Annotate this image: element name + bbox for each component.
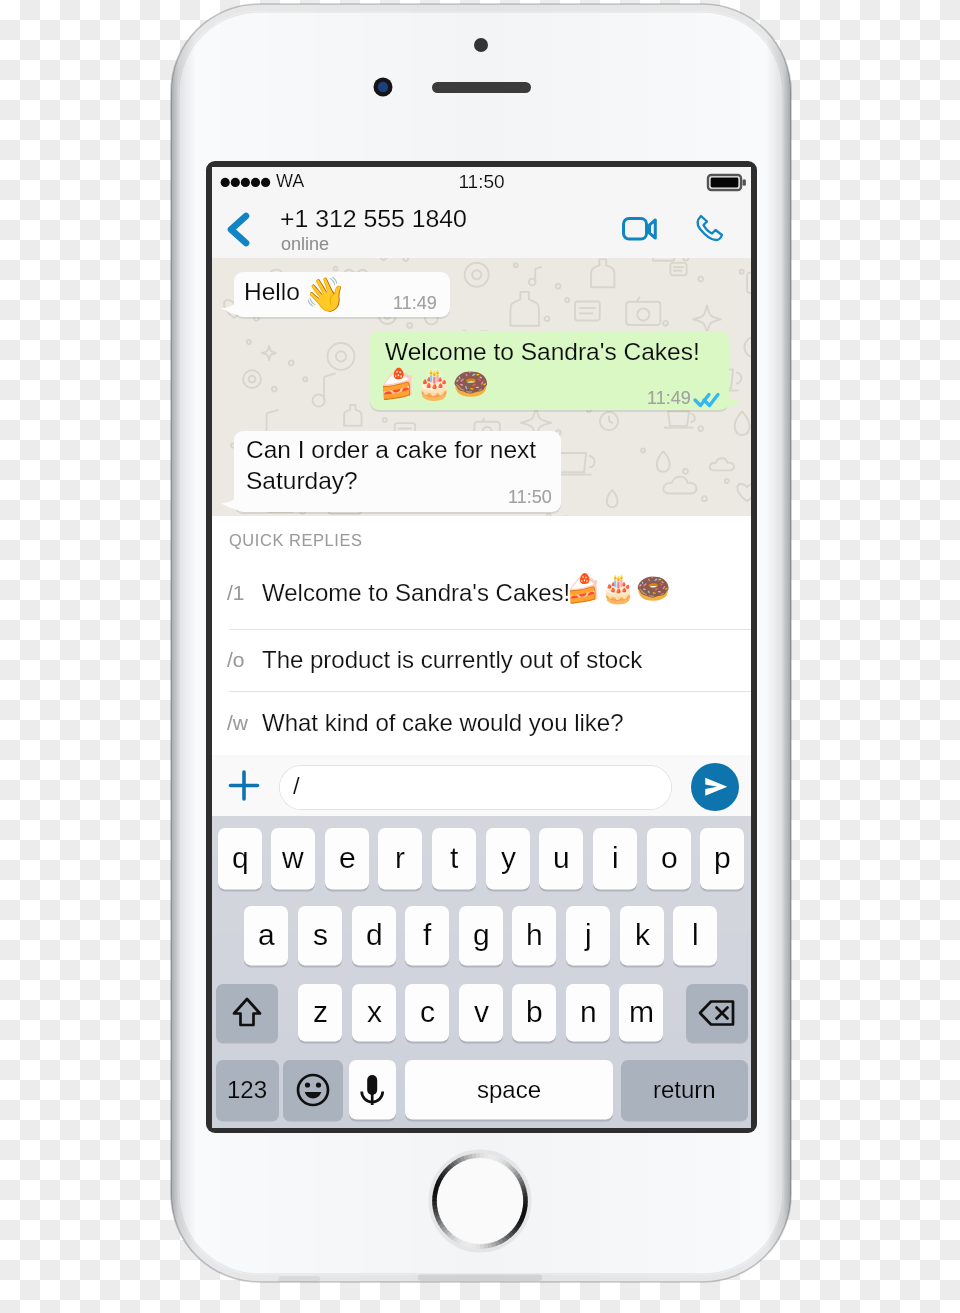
staticText: Hello: [244, 278, 300, 305]
staticText: return: [653, 1076, 716, 1103]
button[interactable]: u: [539, 828, 583, 890]
staticText: 👋: [304, 274, 347, 314]
button[interactable]: z: [298, 984, 342, 1042]
button[interactable]: m: [619, 984, 663, 1042]
staticText: /1: [227, 581, 245, 604]
staticText: online: [281, 234, 330, 254]
staticText: t: [450, 841, 459, 875]
button[interactable]: return: [621, 1060, 748, 1120]
button[interactable]: Back: [214, 200, 262, 258]
staticText: p: [714, 841, 731, 875]
staticText: The product is currently out of stock: [262, 646, 643, 673]
staticText: y: [501, 841, 516, 875]
staticText: n: [580, 995, 597, 1029]
staticText: z: [313, 995, 328, 1029]
staticText: 11:49: [393, 293, 437, 313]
button[interactable]: x: [352, 984, 396, 1042]
staticText: i: [612, 841, 619, 875]
button[interactable]: Dictate: [349, 1060, 396, 1120]
button[interactable]: /1: [212, 564, 751, 625]
staticText: s: [313, 918, 328, 952]
staticText: g: [473, 918, 490, 952]
button[interactable]: Backspace: [686, 984, 748, 1042]
button[interactable]: h: [512, 906, 556, 966]
button[interactable]: v: [459, 984, 503, 1042]
button[interactable]: b: [512, 984, 556, 1042]
staticText: c: [420, 995, 435, 1029]
button[interactable]: a: [244, 906, 288, 966]
staticText: q: [232, 841, 249, 875]
button[interactable]: s: [298, 906, 342, 966]
staticText: o: [661, 841, 678, 875]
staticText: h: [526, 918, 543, 952]
staticText: u: [553, 841, 570, 875]
staticText: /w: [227, 711, 248, 734]
button[interactable]: Shift: [216, 984, 278, 1042]
button[interactable]: /w: [212, 690, 751, 752]
staticText: QUICK REPLIES: [229, 531, 363, 549]
staticText: 11:49: [647, 388, 691, 408]
staticText: v: [474, 995, 489, 1029]
button[interactable]: e: [325, 828, 369, 890]
staticText: e: [339, 841, 356, 875]
staticText: f: [423, 918, 432, 952]
staticText: 🍰🎂🍩: [566, 572, 671, 605]
staticText: w: [282, 841, 304, 875]
button[interactable]: y: [486, 828, 530, 890]
button[interactable]: d: [352, 906, 396, 966]
staticText: 123: [227, 1076, 268, 1103]
staticText: /: [293, 772, 300, 799]
button[interactable]: k: [620, 906, 664, 966]
button[interactable]: 123: [216, 1060, 279, 1120]
staticText: 🍰🎂🍩: [379, 367, 490, 402]
button[interactable]: f: [405, 906, 449, 966]
staticText: x: [367, 995, 382, 1029]
button[interactable]: i: [593, 828, 637, 890]
staticText: 11:50: [508, 487, 552, 507]
button[interactable]: Video call: [610, 200, 668, 258]
staticText: l: [692, 918, 699, 952]
staticText: 11:50: [212, 171, 751, 192]
staticText: k: [635, 918, 650, 952]
button[interactable]: g: [459, 906, 503, 966]
staticText: Can I order a cake for next Saturday?: [246, 436, 537, 494]
button[interactable]: Attach: [218, 760, 270, 811]
button[interactable]: Voice call: [680, 200, 738, 258]
button[interactable]: t: [432, 828, 476, 890]
staticText: a: [258, 918, 275, 952]
button[interactable]: o: [647, 828, 691, 890]
staticText: space: [477, 1076, 542, 1103]
button[interactable]: Emoji: [283, 1060, 343, 1120]
staticText: WA: [276, 171, 305, 191]
button[interactable]: w: [271, 828, 315, 890]
staticText: m: [629, 995, 654, 1029]
staticText: Welcome to Sandra's Cakes!: [385, 338, 700, 365]
staticText: j: [585, 918, 592, 952]
staticText: Welcome to Sandra's Cakes!: [262, 579, 571, 606]
button[interactable]: n: [566, 984, 610, 1042]
staticText: b: [526, 995, 543, 1029]
staticText: r: [395, 841, 405, 875]
button[interactable]: c: [405, 984, 449, 1042]
button[interactable]: r: [378, 828, 422, 890]
staticText: +1 312 555 1840: [280, 205, 467, 233]
button[interactable]: space: [405, 1060, 613, 1120]
button[interactable]: Send: [691, 763, 739, 811]
button[interactable]: /o: [212, 627, 751, 689]
button[interactable]: /: [279, 765, 672, 810]
button[interactable]: p: [700, 828, 744, 890]
staticText: /o: [227, 648, 245, 671]
button[interactable]: j: [566, 906, 610, 966]
staticText: What kind of cake would you like?: [262, 709, 624, 736]
button[interactable]: l: [673, 906, 717, 966]
button[interactable]: q: [218, 828, 262, 890]
staticText: d: [366, 918, 383, 952]
